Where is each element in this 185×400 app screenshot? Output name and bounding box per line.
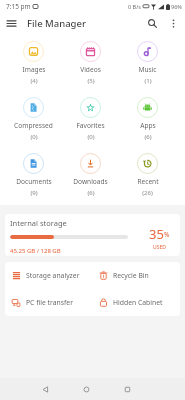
staticText: Favorites: [76, 121, 105, 130]
staticText: File Manager: [27, 17, 86, 30]
staticText: Recent: [137, 177, 159, 186]
button[interactable]: Recycle Bin: [92, 262, 180, 288]
button[interactable]: Recent: [119, 153, 176, 204]
button[interactable]: Home: [75, 378, 97, 400]
button[interactable]: More options: [163, 13, 183, 33]
staticText: Recycle Bin: [113, 271, 149, 280]
button[interactable]: Menu: [0, 12, 22, 34]
staticText: USED: [153, 244, 166, 251]
staticText: Documents: [16, 177, 52, 186]
button[interactable]: Documents: [5, 153, 62, 204]
staticText: 0 B/s: [128, 3, 141, 10]
staticText: Images: [22, 65, 46, 74]
staticText: (6): [87, 189, 95, 197]
button[interactable]: Recents: [116, 378, 138, 400]
staticText: Internal storage: [10, 218, 67, 228]
staticText: (6): [144, 133, 152, 141]
button[interactable]: Downloads: [62, 153, 119, 204]
staticText: Videos: [80, 65, 101, 74]
button[interactable]: Hidden Cabinet: [92, 288, 180, 316]
staticText: Apps: [140, 121, 156, 130]
staticText: (4): [30, 77, 38, 85]
staticText: 35: [149, 225, 164, 243]
button[interactable]: Videos: [62, 41, 119, 97]
button[interactable]: Search: [141, 12, 163, 34]
staticText: (0): [30, 133, 38, 141]
button[interactable]: Back: [34, 378, 56, 400]
staticText: Downloads: [73, 177, 108, 186]
button[interactable]: Favorites: [62, 97, 119, 153]
staticText: Compressed: [14, 121, 53, 130]
staticText: Hidden Cabinet: [113, 298, 163, 307]
staticText: (5): [87, 77, 95, 85]
staticText: %: [164, 230, 170, 239]
staticText: (9): [30, 189, 38, 197]
staticText: (26): [142, 189, 153, 197]
staticText: 7:15 pm: [6, 2, 31, 11]
button[interactable]: Storage analyzer: [5, 262, 92, 288]
staticText: 96%: [171, 3, 182, 10]
staticText: (0): [87, 133, 95, 141]
button[interactable]: PC file transfer: [5, 288, 92, 316]
button[interactable]: Images: [5, 41, 62, 97]
button[interactable]: Music: [119, 41, 176, 97]
staticText: (1): [144, 77, 152, 85]
button[interactable]: Apps: [119, 97, 176, 153]
staticText: Music: [138, 65, 157, 74]
button[interactable]: Internal storage: [5, 214, 180, 256]
staticText: 45.25 GB / 128 GB: [10, 247, 61, 255]
button[interactable]: Compressed: [5, 97, 62, 153]
staticText: PC file transfer: [26, 298, 73, 307]
staticText: Storage analyzer: [26, 271, 80, 280]
